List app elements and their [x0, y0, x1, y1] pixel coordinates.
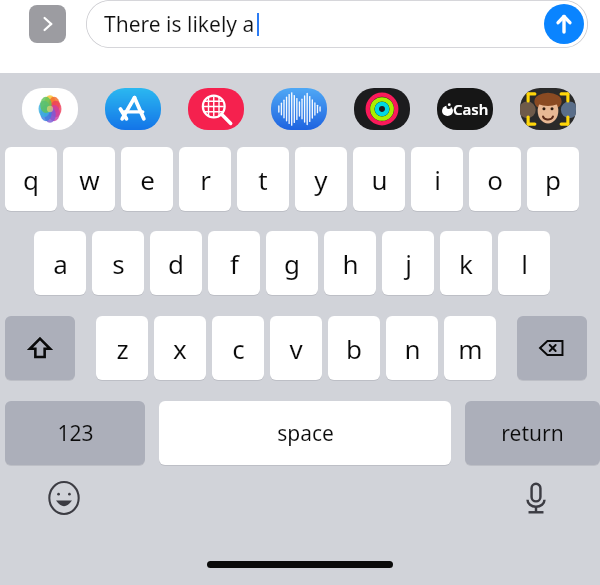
staticText: d: [168, 246, 184, 281]
staticText: Cash: [453, 99, 489, 119]
staticText: e: [140, 162, 155, 197]
button[interactable]: Emoji: [42, 476, 86, 520]
other: Shift: [5, 316, 75, 382]
button[interactable]: t: [237, 147, 289, 211]
button[interactable]: Voice Memos: [271, 88, 327, 130]
staticText: 123: [57, 419, 94, 448]
button[interactable]: o: [469, 147, 521, 211]
button[interactable]: Dictate: [514, 476, 558, 520]
button[interactable]: n: [386, 316, 438, 380]
button[interactable]: a: [34, 231, 86, 295]
button[interactable]: g: [266, 231, 318, 295]
button[interactable]: h: [324, 231, 376, 295]
button[interactable]: Send: [544, 4, 584, 44]
button[interactable]: c: [212, 316, 264, 380]
button[interactable]: Apple Cash: [437, 88, 493, 130]
staticText: y: [314, 162, 328, 197]
button[interactable]: e: [121, 147, 173, 211]
button[interactable]: return: [465, 401, 600, 465]
button[interactable]: v: [270, 316, 322, 380]
button[interactable]: m: [444, 316, 496, 380]
staticText: p: [545, 162, 561, 197]
button[interactable]: q: [5, 147, 57, 211]
staticText: g: [284, 246, 300, 281]
staticText: h: [342, 246, 359, 281]
staticText: f: [230, 246, 239, 281]
button[interactable]: There is likely a: [86, 0, 588, 48]
staticText: r: [200, 162, 211, 197]
button[interactable]: j: [382, 231, 434, 295]
button[interactable]: Show apps: [29, 5, 66, 43]
staticText: i: [434, 162, 441, 197]
staticText: j: [405, 246, 412, 281]
staticText: return: [501, 419, 564, 448]
button[interactable]: 123: [5, 401, 145, 465]
staticText: x: [173, 331, 187, 366]
button[interactable]: [517, 316, 587, 380]
button[interactable]: App Store: [105, 88, 161, 130]
button[interactable]: p: [527, 147, 579, 211]
staticText: b: [346, 331, 362, 366]
button[interactable]: y: [295, 147, 347, 211]
button[interactable]: l: [498, 231, 550, 295]
staticText: v: [289, 331, 303, 366]
button[interactable]: u: [353, 147, 405, 211]
staticText: w: [79, 162, 100, 197]
button[interactable]: i: [411, 147, 463, 211]
staticText: a: [53, 246, 68, 281]
button[interactable]: [5, 316, 75, 380]
button[interactable]: s: [92, 231, 144, 295]
staticText: t: [258, 162, 268, 197]
button[interactable]: f: [208, 231, 260, 295]
button[interactable]: Memoji: [520, 88, 576, 130]
staticText: n: [404, 331, 421, 366]
staticText: There is likely a: [104, 10, 255, 39]
staticText: u: [371, 162, 388, 197]
button[interactable]: x: [154, 316, 206, 380]
staticText: s: [112, 246, 125, 281]
button[interactable]: r: [179, 147, 231, 211]
button[interactable]: Photos: [22, 88, 78, 130]
button[interactable]: space: [159, 401, 451, 465]
button[interactable]: z: [96, 316, 148, 380]
staticText: o: [487, 162, 503, 197]
button[interactable]: d: [150, 231, 202, 295]
staticText: l: [521, 246, 528, 281]
staticText: k: [459, 246, 473, 281]
staticText: c: [232, 331, 245, 366]
button[interactable]: Images: [188, 88, 244, 130]
staticText: z: [116, 331, 129, 366]
button[interactable]: b: [328, 316, 380, 380]
button[interactable]: w: [63, 147, 115, 211]
button[interactable]: k: [440, 231, 492, 295]
staticText: m: [458, 331, 483, 366]
other: Delete: [517, 316, 587, 382]
staticText: space: [277, 419, 334, 448]
staticText: q: [23, 162, 39, 197]
button[interactable]: Fitness: [354, 88, 410, 130]
